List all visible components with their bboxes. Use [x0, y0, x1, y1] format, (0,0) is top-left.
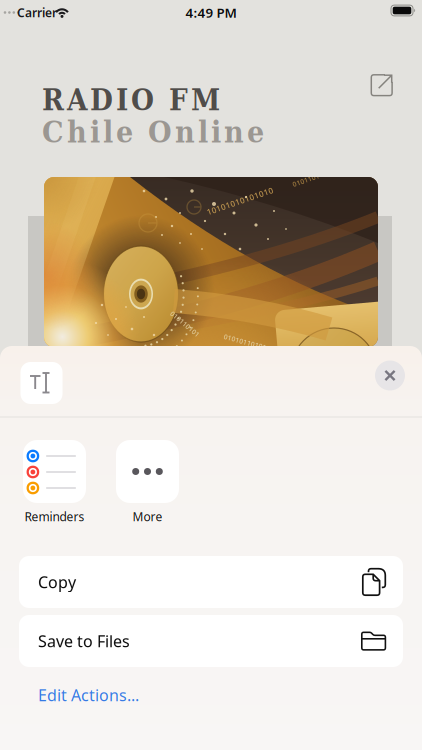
staticText: 10101010101010: [205, 196, 275, 206]
button[interactable]: Reminders: [23, 440, 86, 503]
staticText: R A D I O F M: [42, 83, 220, 117]
staticText: 0101101: [292, 176, 320, 184]
button[interactable]: More: [116, 440, 179, 503]
staticText: C h i l e O n l i n e: [42, 114, 264, 150]
staticText: Reminders: [24, 508, 84, 524]
staticText: Carrier: [17, 4, 57, 20]
staticText: 0101011010101: [223, 339, 275, 347]
staticText: 4:49 PM: [185, 4, 236, 21]
button[interactable]: Close: [375, 360, 405, 390]
button[interactable]: Copy: [19, 556, 403, 608]
staticText: Edit Actions...: [38, 684, 139, 706]
staticText: 010110101: [167, 320, 203, 328]
button[interactable]: Edit Actions...: [38, 684, 139, 706]
button[interactable]: Save to Files: [19, 615, 403, 667]
button[interactable]: Open in browser: [370, 74, 393, 97]
staticText: More: [132, 508, 162, 524]
staticText: Copy: [38, 571, 76, 593]
staticText: Save to Files: [38, 630, 130, 652]
